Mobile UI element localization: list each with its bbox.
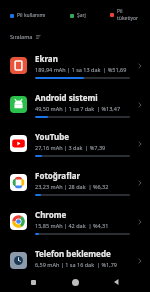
staticText: Ekran (35, 53, 58, 64)
staticText: Şarj (77, 12, 86, 19)
staticText: 189,94 mAh | 1 sa 13 dak | %51,69 (35, 66, 127, 73)
staticText: 6,59 mAh | 1 sa 16 dak | %1,79 (35, 261, 117, 268)
button[interactable]: YouTube (0, 124, 150, 163)
staticText: Sıralama (10, 33, 33, 40)
button[interactable]: Hücre bekleme (0, 280, 150, 292)
other: Ayrıntılar (136, 218, 144, 226)
staticText: Chrome (35, 209, 67, 220)
other: Ayrıntılar (136, 257, 144, 265)
staticText: 15,85 mAh | 42 dak | %4,31 (35, 222, 109, 229)
button[interactable]: Sıralama (8, 31, 44, 42)
staticText: Telefon beklemede (35, 248, 111, 259)
staticText: Hücre bekleme (35, 280, 96, 291)
button[interactable]: Geri (108, 273, 126, 291)
button[interactable]: Android sistemi (0, 85, 150, 124)
staticText: Android sistemi (35, 92, 98, 103)
staticText: Fotoğraflar (35, 170, 81, 181)
button[interactable]: Chrome (0, 202, 150, 241)
other: Ayrıntılar (136, 62, 144, 70)
staticText: 27,16 mAh | 3 dak | %7,39 (35, 144, 106, 151)
other: Ayrıntılar (136, 140, 144, 148)
button[interactable]: Fotoğraflar (0, 163, 150, 202)
staticText: YouTube (35, 131, 70, 142)
staticText: 23,23 mAh | 28 dak | %6,32 (35, 183, 109, 190)
button[interactable]: Son uygulamalar (24, 273, 42, 291)
button[interactable]: Ana ekran (66, 273, 84, 291)
other: Ayrıntılar (136, 179, 144, 187)
staticText: 49,50 mAh | 1 sa 7 dak | %13,47 (35, 105, 121, 112)
staticText: Pil tüketiyor (117, 8, 140, 22)
staticText: Pil kullanımı (17, 12, 46, 19)
button[interactable]: Ekran (0, 46, 150, 85)
button[interactable]: Telefon beklemede (0, 241, 150, 280)
other: Ayrıntılar (136, 101, 144, 109)
